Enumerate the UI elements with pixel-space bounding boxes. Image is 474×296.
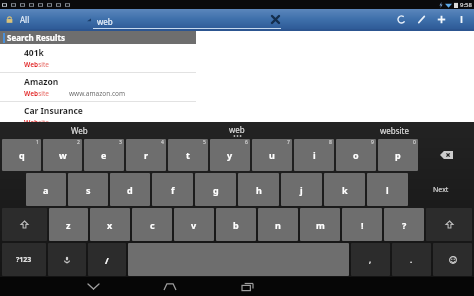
button[interactable]: Recent apps xyxy=(232,277,262,296)
button[interactable]: Clear search xyxy=(267,11,283,27)
button[interactable]: u xyxy=(252,139,292,171)
button[interactable]: i xyxy=(294,139,334,171)
button[interactable]: Next xyxy=(410,173,472,206)
button[interactable]: z xyxy=(49,208,88,241)
staticText: / xyxy=(105,254,109,266)
button[interactable]: 401k xyxy=(0,44,196,73)
button[interactable]: Shift xyxy=(2,208,47,241)
button[interactable]: Edit xyxy=(411,9,431,29)
button[interactable]: d xyxy=(110,173,150,206)
staticText: Website xyxy=(24,60,49,69)
staticText: q xyxy=(19,149,25,161)
staticText: 9:58 xyxy=(460,1,472,9)
staticText: i xyxy=(313,149,316,161)
staticText: k xyxy=(342,184,348,196)
button[interactable]: Backspace xyxy=(420,139,472,171)
button[interactable]: v xyxy=(174,208,214,241)
button[interactable]: More options xyxy=(451,9,471,29)
button[interactable]: n xyxy=(258,208,298,241)
button[interactable]: k xyxy=(324,173,365,206)
staticText: ?123 xyxy=(16,255,32,265)
button[interactable]: a xyxy=(26,173,66,206)
staticText: x xyxy=(107,219,113,231)
staticText: a xyxy=(43,184,49,196)
button[interactable]: website xyxy=(316,122,474,138)
button[interactable]: Amazon xyxy=(0,73,196,102)
button[interactable]: r xyxy=(126,139,166,171)
button[interactable]: y xyxy=(210,139,250,171)
staticText: u xyxy=(269,149,275,161)
staticText: h xyxy=(256,184,262,196)
button[interactable]: x xyxy=(90,208,130,241)
button[interactable]: b xyxy=(216,208,256,241)
staticText: Web xyxy=(71,125,88,136)
button[interactable]: web xyxy=(93,9,283,29)
staticText: p xyxy=(395,149,401,161)
button[interactable]: Home xyxy=(155,277,185,296)
staticText: g xyxy=(213,184,219,196)
button[interactable]: o xyxy=(336,139,376,171)
staticText: Website xyxy=(24,89,49,98)
button[interactable]: g xyxy=(195,173,236,206)
button[interactable]: s xyxy=(68,173,108,206)
staticText: 4 xyxy=(161,139,164,146)
button[interactable]: t xyxy=(168,139,208,171)
staticText: Website xyxy=(24,118,49,122)
staticText: n xyxy=(275,219,281,231)
button[interactable]: ! xyxy=(342,208,382,241)
staticText: r xyxy=(144,149,149,161)
staticText: Next xyxy=(433,185,449,195)
staticText: 5 xyxy=(203,139,206,146)
button[interactable]: w xyxy=(43,139,82,171)
staticText: 8 xyxy=(329,139,332,146)
button[interactable]: q xyxy=(2,139,41,171)
staticText: w xyxy=(59,149,67,161)
staticText: Amazon xyxy=(24,76,59,88)
staticText: web xyxy=(97,16,113,27)
button[interactable]: web xyxy=(158,122,316,138)
staticText: f xyxy=(171,184,175,196)
button[interactable]: , xyxy=(351,243,390,276)
staticText: www.amazon.com xyxy=(69,89,126,98)
staticText: All xyxy=(20,14,30,25)
button[interactable]: . xyxy=(392,243,431,276)
button[interactable]: Add xyxy=(431,9,451,29)
button[interactable]: Shift xyxy=(426,208,472,241)
staticText: y xyxy=(227,149,233,161)
staticText: Search Results xyxy=(7,32,65,43)
button[interactable]: ? xyxy=(384,208,424,241)
button[interactable]: Refresh xyxy=(391,9,411,29)
staticText: , xyxy=(369,254,372,265)
button[interactable]: / xyxy=(88,243,126,276)
staticText: c xyxy=(150,219,155,231)
button[interactable]: h xyxy=(238,173,279,206)
button[interactable]: l xyxy=(367,173,408,206)
button[interactable]: e xyxy=(84,139,124,171)
staticText: m xyxy=(316,219,325,231)
button[interactable]: Emoji xyxy=(433,243,472,276)
staticText: ! xyxy=(361,219,364,231)
button[interactable]: m xyxy=(300,208,340,241)
button[interactable]: j xyxy=(281,173,322,206)
staticText: s xyxy=(86,184,91,196)
staticText: 1 xyxy=(36,139,39,146)
staticText: d xyxy=(127,184,133,196)
button[interactable]: f xyxy=(152,173,193,206)
button[interactable]: ?123 xyxy=(2,243,46,276)
button[interactable]: p xyxy=(378,139,418,171)
staticText: l xyxy=(386,184,389,196)
staticText: t xyxy=(186,149,190,161)
button[interactable]: Account xyxy=(5,9,93,29)
button[interactable]: Back xyxy=(78,277,108,296)
button[interactable]: Car Insurance xyxy=(0,102,196,122)
button[interactable]: c xyxy=(132,208,172,241)
staticText: v xyxy=(191,219,197,231)
staticText: 2 xyxy=(77,139,80,146)
staticText: 0 xyxy=(413,139,416,146)
staticText: Car Insurance xyxy=(24,105,83,117)
button[interactable]: Web xyxy=(0,122,158,138)
staticText: z xyxy=(66,219,71,231)
button[interactable]: Voice input xyxy=(48,243,86,276)
staticText: 9 xyxy=(371,139,374,146)
